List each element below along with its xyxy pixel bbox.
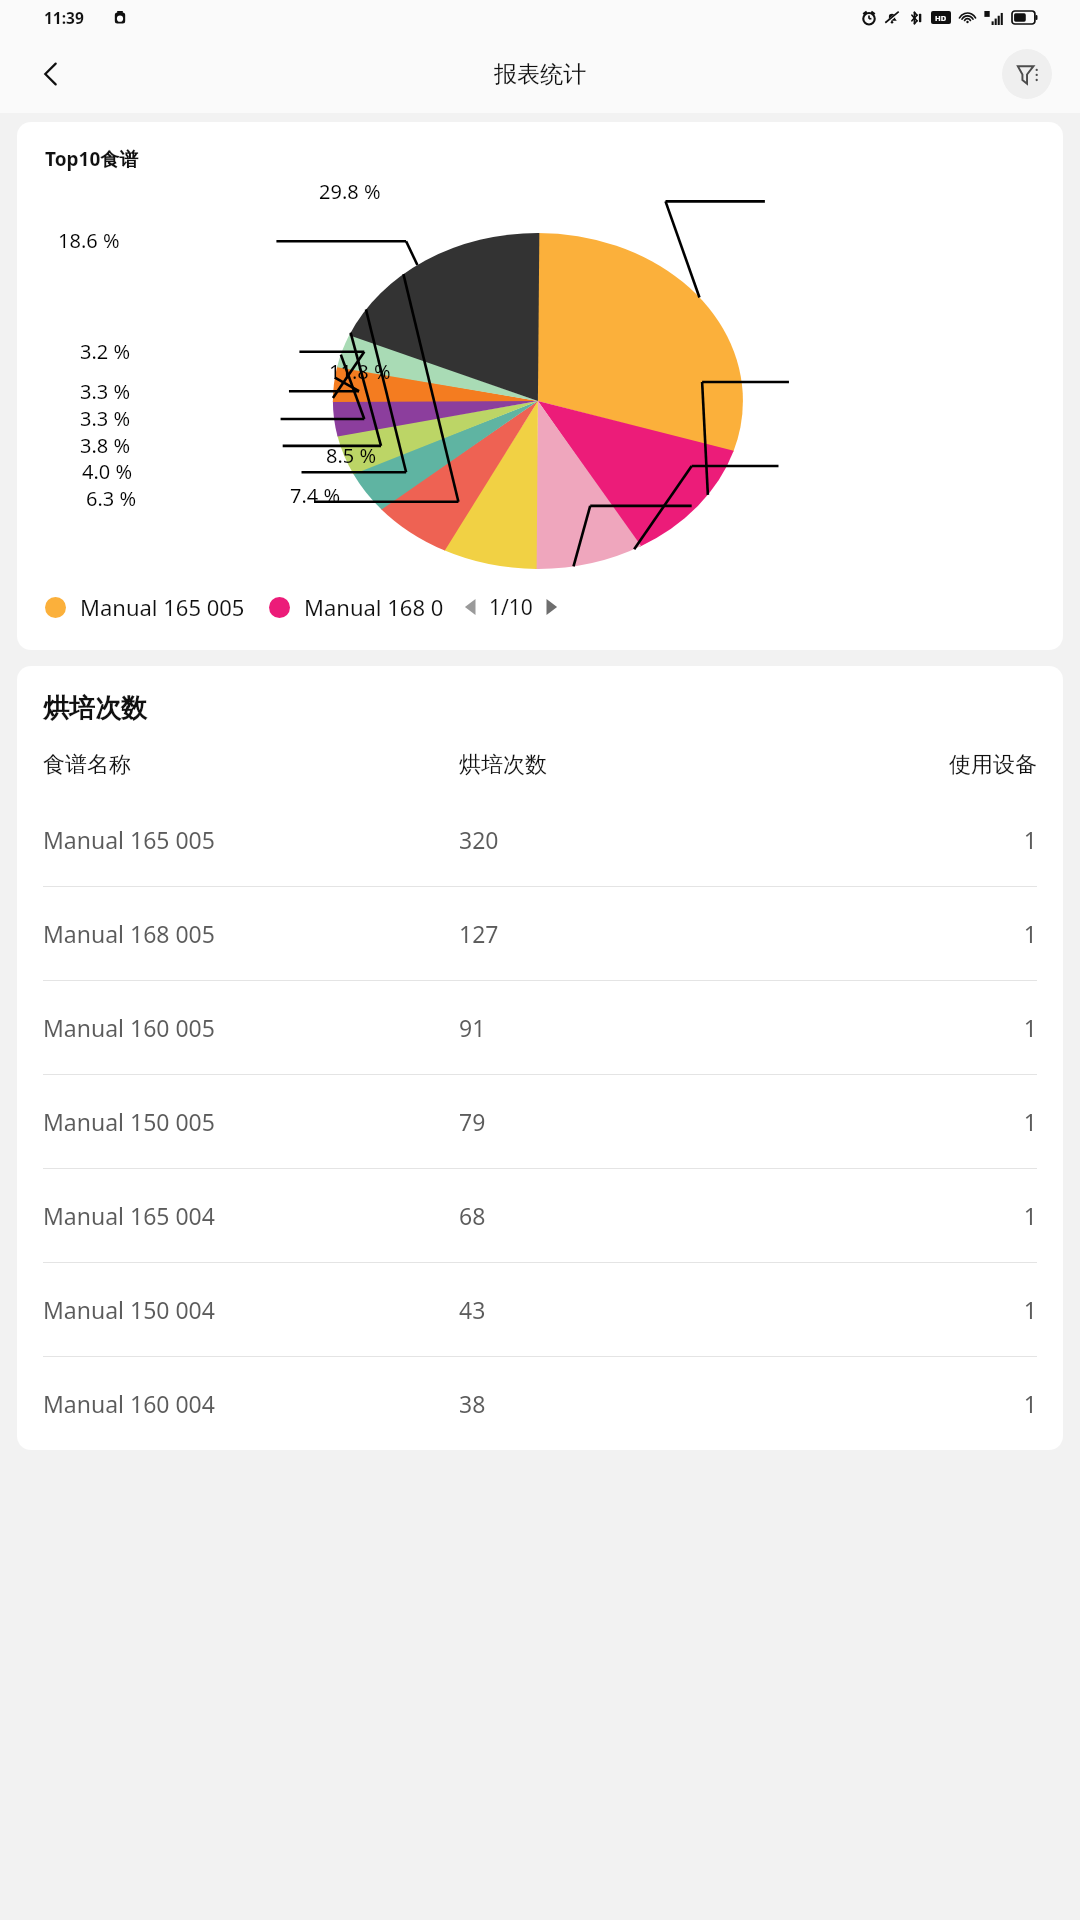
staticText: 38	[459, 1388, 768, 1419]
button[interactable]: Manual 150 005	[17, 1075, 1063, 1168]
staticText: 6.3 %	[86, 485, 137, 512]
staticText: 3.8 %	[80, 432, 131, 459]
button[interactable]: Manual 160 004	[17, 1357, 1063, 1450]
staticText: 7.4 %	[290, 482, 341, 509]
staticText: 68	[459, 1200, 768, 1231]
staticText: Manual 160 004	[43, 1388, 459, 1419]
staticText: 烘培次数	[459, 751, 768, 779]
button[interactable]: Next page	[538, 594, 564, 620]
staticText: 11.8 %	[329, 358, 391, 385]
staticText: 8.5 %	[326, 442, 377, 469]
button[interactable]: Manual 160 005	[17, 981, 1063, 1074]
staticText: 91	[459, 1012, 768, 1043]
staticText: 1	[768, 1106, 1037, 1137]
button[interactable]: Manual 165 005	[45, 592, 245, 622]
button[interactable]: Back	[24, 47, 78, 101]
staticText: 1	[768, 1200, 1037, 1231]
staticText: 127	[459, 918, 768, 949]
staticText: 1	[768, 1012, 1037, 1043]
staticText: 79	[459, 1106, 768, 1137]
staticText: HD	[935, 13, 947, 23]
staticText: Top10食谱	[45, 146, 139, 172]
staticText: 3.3 %	[80, 405, 131, 432]
staticText: 11:39	[44, 7, 84, 28]
staticText: 使用设备	[768, 751, 1037, 779]
staticText: 食谱名称	[43, 751, 459, 779]
button[interactable]: Filter	[1002, 49, 1052, 99]
staticText: 烘培次数	[43, 692, 147, 725]
staticText: 1	[768, 824, 1037, 855]
staticText: 1	[768, 1388, 1037, 1419]
staticText: Manual 165 005	[80, 592, 245, 622]
staticText: 报表统计	[494, 60, 586, 89]
staticText: 18.6 %	[58, 227, 120, 254]
staticText: Manual 150 004	[43, 1294, 459, 1325]
staticText: 3.2 %	[80, 338, 131, 365]
staticText: 3.3 %	[80, 378, 131, 405]
button[interactable]: Manual 165 005	[17, 793, 1063, 886]
staticText: Manual 168 0	[304, 592, 444, 622]
staticText: 29.8 %	[319, 178, 381, 205]
button[interactable]: Manual 168 005	[17, 887, 1063, 980]
staticText: 1	[768, 1294, 1037, 1325]
button[interactable]: Manual 165 004	[17, 1169, 1063, 1262]
staticText: 43	[459, 1294, 768, 1325]
staticText: Manual 165 004	[43, 1200, 459, 1231]
staticText: 4.0 %	[82, 458, 133, 485]
staticText: 1	[768, 918, 1037, 949]
staticText: Manual 150 005	[43, 1106, 459, 1137]
button[interactable]: Previous page	[458, 594, 484, 620]
button[interactable]: Manual 150 004	[17, 1263, 1063, 1356]
staticText: 1/10	[489, 593, 533, 622]
staticText: 320	[459, 824, 768, 855]
staticText: Manual 168 005	[43, 918, 459, 949]
button[interactable]: Manual 168 0	[269, 592, 444, 622]
staticText: Manual 165 005	[43, 824, 459, 855]
staticText: Manual 160 005	[43, 1012, 459, 1043]
